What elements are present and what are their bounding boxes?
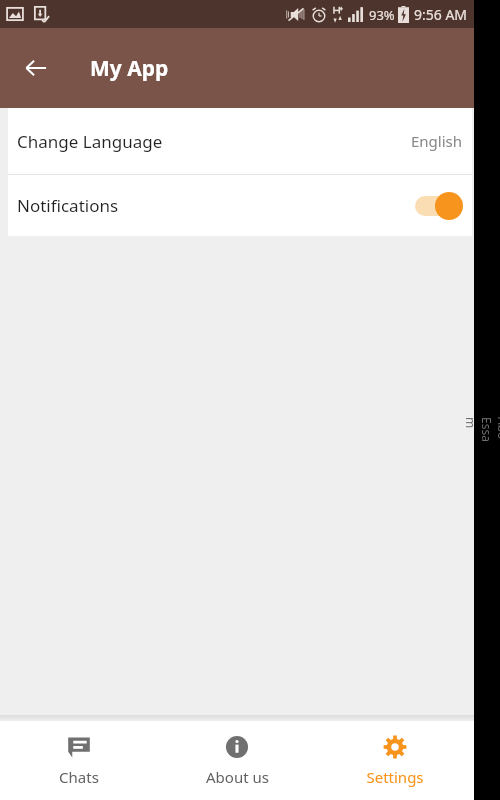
button[interactable]: Notifications: [8, 175, 472, 236]
button[interactable]: Chats: [0, 721, 158, 800]
button[interactable]: About us: [158, 721, 316, 800]
button[interactable]: Settings: [316, 721, 474, 800]
staticText: English: [411, 131, 463, 151]
button[interactable]: Back: [12, 44, 60, 92]
staticText: Change Language: [17, 130, 163, 153]
button[interactable]: Change Language: [8, 108, 472, 174]
staticText: About us: [206, 767, 269, 787]
staticText: 93%: [369, 6, 395, 24]
staticText: My App: [90, 54, 169, 83]
staticText: 9:56 AM: [414, 5, 468, 24]
staticText: Notifications: [17, 194, 119, 217]
staticText: Abo Essam: [463, 417, 500, 443]
button[interactable]: Notifications toggle: [411, 191, 463, 221]
staticText: Chats: [59, 767, 99, 787]
staticText: Settings: [366, 767, 424, 787]
